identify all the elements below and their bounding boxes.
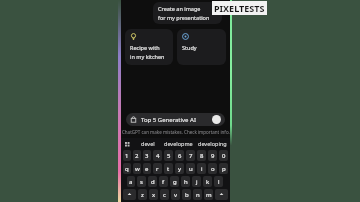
staticText: c bbox=[163, 191, 166, 199]
button[interactable]: j bbox=[192, 176, 201, 187]
staticText: r bbox=[156, 165, 159, 173]
staticText: Study vocabulary bbox=[182, 44, 223, 51]
staticText: 6 bbox=[178, 152, 182, 160]
button[interactable]: 3 bbox=[143, 150, 151, 161]
staticText: s bbox=[140, 178, 143, 186]
staticText: l bbox=[218, 178, 220, 186]
button[interactable]: a bbox=[127, 176, 135, 187]
staticText: e bbox=[145, 165, 149, 173]
button[interactable]: t bbox=[164, 163, 173, 174]
staticText: t bbox=[167, 165, 170, 173]
button[interactable]: 2 bbox=[133, 150, 141, 161]
staticText: f bbox=[162, 178, 165, 186]
button[interactable]: 4 bbox=[153, 150, 162, 161]
staticText: 3 bbox=[145, 152, 149, 160]
button[interactable]: developing bbox=[196, 138, 228, 149]
staticText: o bbox=[211, 165, 215, 173]
staticText: 1 bbox=[125, 152, 129, 160]
button[interactable]: Create an image bbox=[153, 2, 222, 24]
staticText: n bbox=[196, 191, 200, 199]
staticText: 2 bbox=[135, 152, 139, 160]
button[interactable]: Recipe with what's bbox=[125, 29, 173, 65]
button[interactable]: Keyboard settings bbox=[123, 140, 131, 148]
button[interactable]: 9 bbox=[208, 150, 217, 161]
staticText: for my presentation bbox=[158, 14, 210, 21]
staticText: in my kitchen bbox=[130, 53, 165, 60]
button[interactable]: devel bbox=[131, 138, 164, 149]
staticText: 0 bbox=[222, 152, 226, 160]
staticText: a bbox=[129, 178, 133, 186]
button[interactable]: g bbox=[170, 176, 179, 187]
button[interactable]: p bbox=[219, 163, 228, 174]
staticText: developing bbox=[198, 140, 227, 147]
button[interactable]: y bbox=[175, 163, 184, 174]
button[interactable]: 1 bbox=[123, 150, 131, 161]
staticText: g bbox=[173, 178, 177, 186]
button[interactable]: 0 bbox=[219, 150, 228, 161]
button[interactable]: 8 bbox=[197, 150, 206, 161]
button[interactable]: 7 bbox=[186, 150, 195, 161]
staticText: Recipe with what's bbox=[130, 44, 170, 51]
staticText: h bbox=[184, 178, 188, 186]
button[interactable]: 5 bbox=[164, 150, 173, 161]
button[interactable]: c bbox=[160, 189, 169, 200]
button[interactable]: Backspace bbox=[215, 189, 228, 200]
button[interactable]: Attach file bbox=[126, 113, 225, 126]
button[interactable]: r bbox=[153, 163, 162, 174]
button[interactable]: q bbox=[123, 163, 131, 174]
button[interactable]: e bbox=[143, 163, 151, 174]
staticText: 4 bbox=[156, 152, 160, 160]
button[interactable]: m bbox=[204, 189, 213, 200]
staticText: y bbox=[178, 165, 182, 173]
staticText: x bbox=[152, 191, 156, 199]
button[interactable]: o bbox=[208, 163, 217, 174]
staticText: Top 5 Generative AI Tools for develo bbox=[141, 116, 210, 124]
button[interactable]: d bbox=[148, 176, 157, 187]
staticText: p bbox=[222, 165, 226, 173]
button[interactable]: n bbox=[193, 189, 202, 200]
staticText: u bbox=[189, 165, 193, 173]
staticText: k bbox=[206, 178, 210, 186]
button[interactable]: v bbox=[171, 189, 180, 200]
staticText: Create an image bbox=[158, 5, 201, 12]
button[interactable]: h bbox=[181, 176, 190, 187]
button[interactable]: Study vocabulary bbox=[177, 29, 226, 65]
staticText: j bbox=[196, 178, 198, 186]
button[interactable]: w bbox=[133, 163, 141, 174]
button[interactable]: i bbox=[197, 163, 206, 174]
button[interactable]: z bbox=[138, 189, 147, 200]
button[interactable]: Shift bbox=[123, 189, 136, 200]
staticText: z bbox=[141, 191, 144, 199]
button[interactable]: l bbox=[214, 176, 223, 187]
button[interactable]: k bbox=[203, 176, 212, 187]
button[interactable]: s bbox=[137, 176, 146, 187]
staticText: i bbox=[201, 165, 203, 173]
staticText: v bbox=[174, 191, 178, 199]
staticText: q bbox=[125, 165, 129, 173]
staticText: development bbox=[164, 140, 196, 147]
button[interactable]: 6 bbox=[175, 150, 184, 161]
staticText: devel bbox=[141, 140, 155, 147]
staticText: 8 bbox=[200, 152, 204, 160]
staticText: d bbox=[151, 178, 155, 186]
button[interactable]: b bbox=[182, 189, 191, 200]
button[interactable]: f bbox=[159, 176, 168, 187]
staticText: 5 bbox=[167, 152, 171, 160]
other: Attach file bbox=[130, 116, 137, 123]
staticText: b bbox=[185, 191, 189, 199]
button[interactable]: development bbox=[164, 138, 196, 149]
staticText: 7 bbox=[189, 152, 193, 160]
staticText: w bbox=[135, 165, 140, 173]
staticText: PIXELTESTS bbox=[214, 2, 265, 14]
button[interactable]: u bbox=[186, 163, 195, 174]
button[interactable]: Send bbox=[212, 115, 221, 124]
staticText: 9 bbox=[211, 152, 215, 160]
staticText: m bbox=[206, 191, 212, 199]
button[interactable]: x bbox=[149, 189, 158, 200]
staticText: ChatGPT can make mistakes. Check importa… bbox=[122, 129, 230, 135]
